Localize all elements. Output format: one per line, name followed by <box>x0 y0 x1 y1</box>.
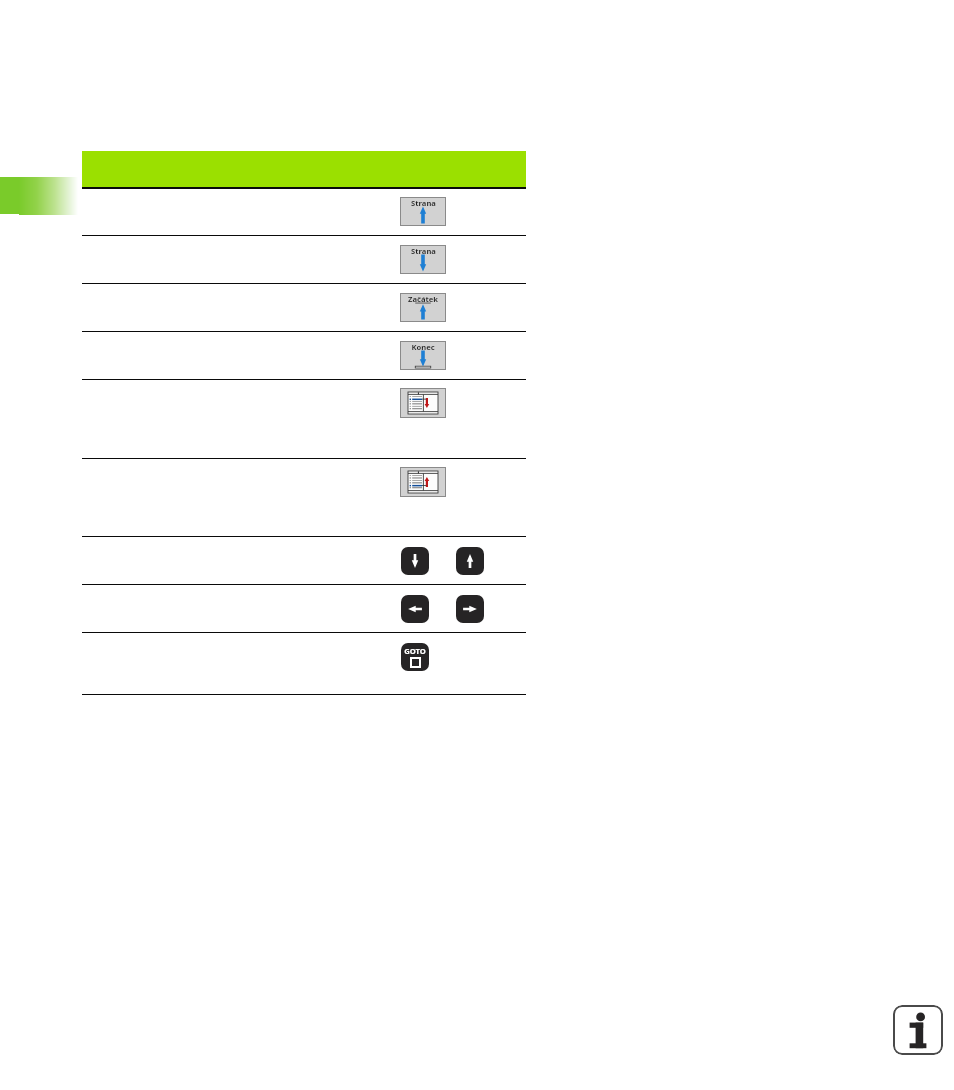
button[interactable]: Move left <box>401 595 429 623</box>
button[interactable]: Move right <box>456 595 484 623</box>
button[interactable]: Začátek <box>400 293 446 322</box>
button[interactable]: Scroll up <box>456 547 484 575</box>
staticText: Začátek <box>408 294 438 304</box>
button[interactable]: Previous block <box>400 467 446 497</box>
button[interactable]: Next block <box>400 388 446 418</box>
button[interactable]: Konec <box>400 341 446 370</box>
button[interactable]: Strana <box>400 245 446 274</box>
button[interactable]: GOTO <box>401 643 429 671</box>
button[interactable]: Scroll down <box>401 547 429 575</box>
staticText: Strana <box>411 198 436 208</box>
staticText: Strana <box>411 246 436 256</box>
button[interactable]: Information <box>893 1005 943 1055</box>
button[interactable]: Strana <box>400 197 446 226</box>
staticText: Konec <box>411 342 435 352</box>
staticText: GOTO <box>404 646 426 656</box>
